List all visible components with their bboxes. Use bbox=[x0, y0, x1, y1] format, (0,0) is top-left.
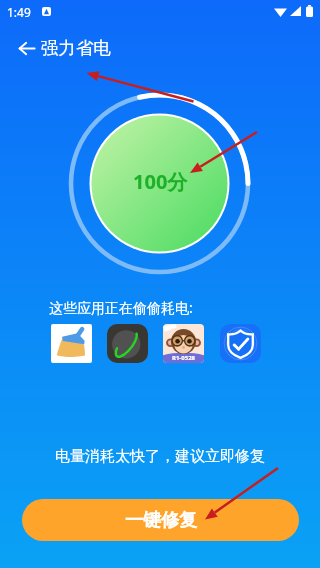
button[interactable]: Monkey app bbox=[163, 324, 204, 363]
button[interactable]: Orbit app bbox=[107, 324, 148, 363]
staticText: 100分 bbox=[133, 168, 188, 195]
staticText: 1:49 bbox=[7, 4, 31, 20]
button[interactable]: 一键修复 bbox=[22, 499, 299, 541]
staticText: R1-0528 bbox=[172, 354, 196, 362]
button[interactable]: Back bbox=[11, 33, 42, 64]
button[interactable]: Security app bbox=[220, 324, 261, 363]
staticText: 一键修复 bbox=[125, 509, 197, 532]
staticText: 电量消耗太快了，建议立即修复 bbox=[0, 447, 320, 466]
staticText: 这些应用正在偷偷耗电: bbox=[49, 298, 193, 317]
button[interactable]: Clean Master bbox=[51, 324, 92, 363]
staticText: 强力省电 bbox=[41, 37, 111, 59]
